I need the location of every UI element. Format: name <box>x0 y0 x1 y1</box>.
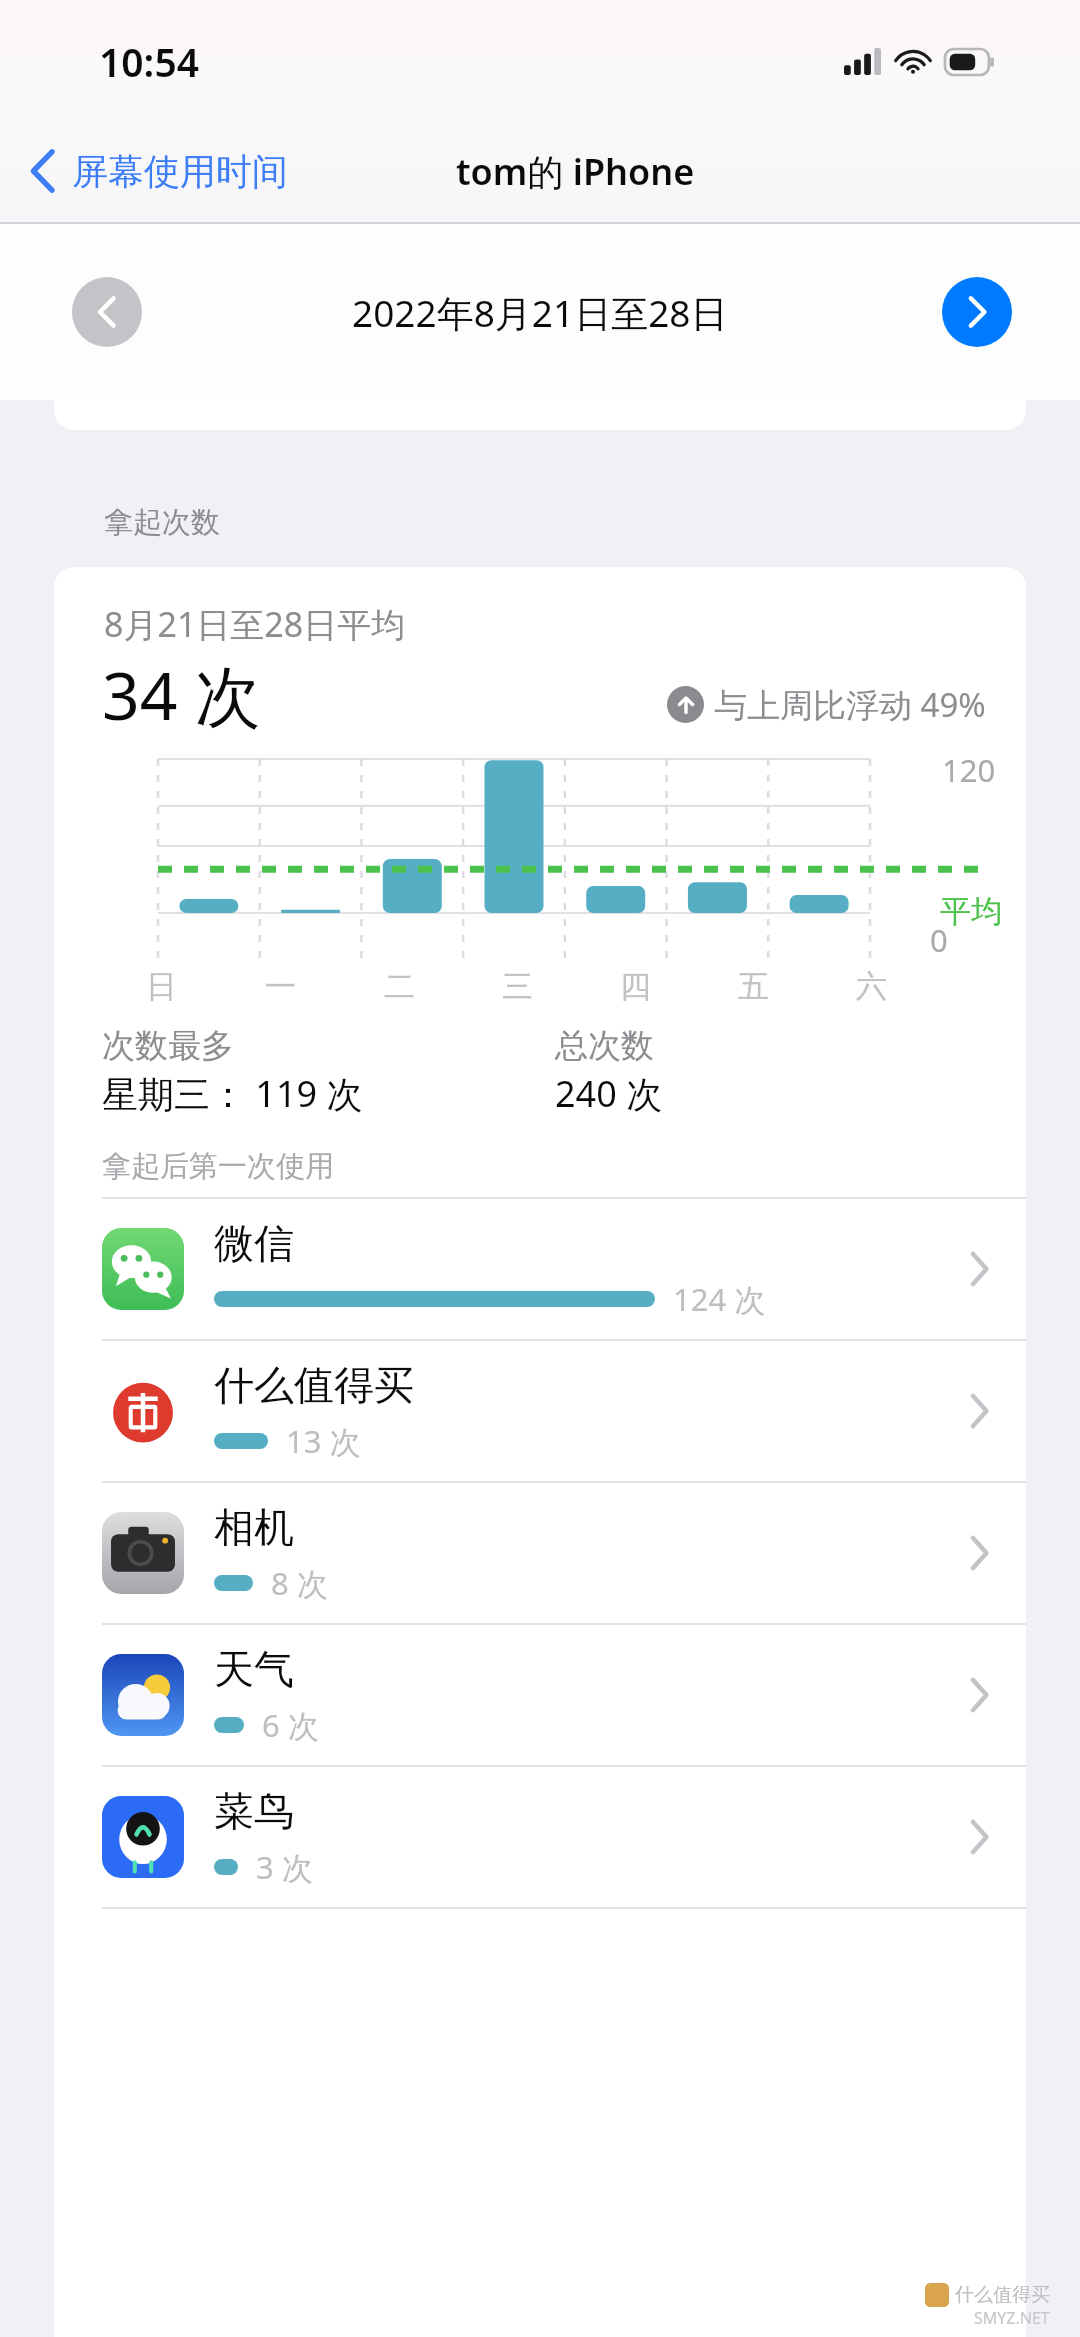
staticText: 菜鸟 <box>214 1786 294 1836</box>
staticText: 2022年8月21日至28日 <box>352 287 728 338</box>
button[interactable]: Next week <box>942 277 1012 347</box>
staticText: 四 <box>620 967 651 1006</box>
staticText: 34 次 <box>102 649 261 739</box>
staticText: 六 <box>856 967 887 1006</box>
staticText: 124 次 <box>673 1278 766 1320</box>
staticText: 13 次 <box>286 1420 361 1462</box>
staticText: 总次数 <box>555 1025 654 1067</box>
staticText: 8 次 <box>271 1562 328 1604</box>
staticText: 与上周比浮动 49% <box>714 682 986 727</box>
staticText: 平均 <box>940 892 1002 931</box>
staticText: 五 <box>738 967 769 1006</box>
staticText: tom的 iPhone <box>456 147 695 196</box>
staticText: 0 <box>930 919 948 961</box>
button[interactable]: 菜鸟 <box>54 1767 1026 1907</box>
staticText: 二 <box>384 967 415 1006</box>
button[interactable]: 相机 <box>54 1483 1026 1623</box>
staticText: 屏幕使用时间 <box>72 149 288 194</box>
staticText: 120 <box>942 749 996 791</box>
staticText: 天气 <box>214 1644 294 1694</box>
staticText: 什么值得买 <box>214 1360 414 1410</box>
button[interactable]: 屏幕使用时间 <box>0 137 298 205</box>
staticText: 什么值得买 <box>955 2283 1050 2307</box>
staticText: 240 次 <box>555 1069 663 1118</box>
staticText: 10:54 <box>99 35 199 88</box>
staticText: 星期三： 119 次 <box>102 1069 363 1118</box>
staticText: 相机 <box>214 1502 294 1552</box>
button[interactable]: 天气 <box>54 1625 1026 1765</box>
staticText: SMYZ.NET <box>974 2307 1050 2329</box>
staticText: 3 次 <box>256 1846 313 1888</box>
button[interactable]: 微信 <box>54 1199 1026 1339</box>
staticText: 8月21日至28日平均 <box>104 601 406 647</box>
staticText: 日 <box>146 967 177 1006</box>
staticText: 6 次 <box>262 1704 319 1746</box>
staticText: 拿起后第一次使用 <box>102 1148 334 1185</box>
button[interactable]: Previous week <box>72 277 142 347</box>
button[interactable]: 什么值得买 <box>54 1341 1026 1481</box>
staticText: 拿起次数 <box>104 504 220 541</box>
staticText: 次数最多 <box>102 1025 234 1067</box>
staticText: 微信 <box>214 1218 294 1268</box>
staticText: 一 <box>265 967 296 1006</box>
staticText: 三 <box>502 967 533 1006</box>
